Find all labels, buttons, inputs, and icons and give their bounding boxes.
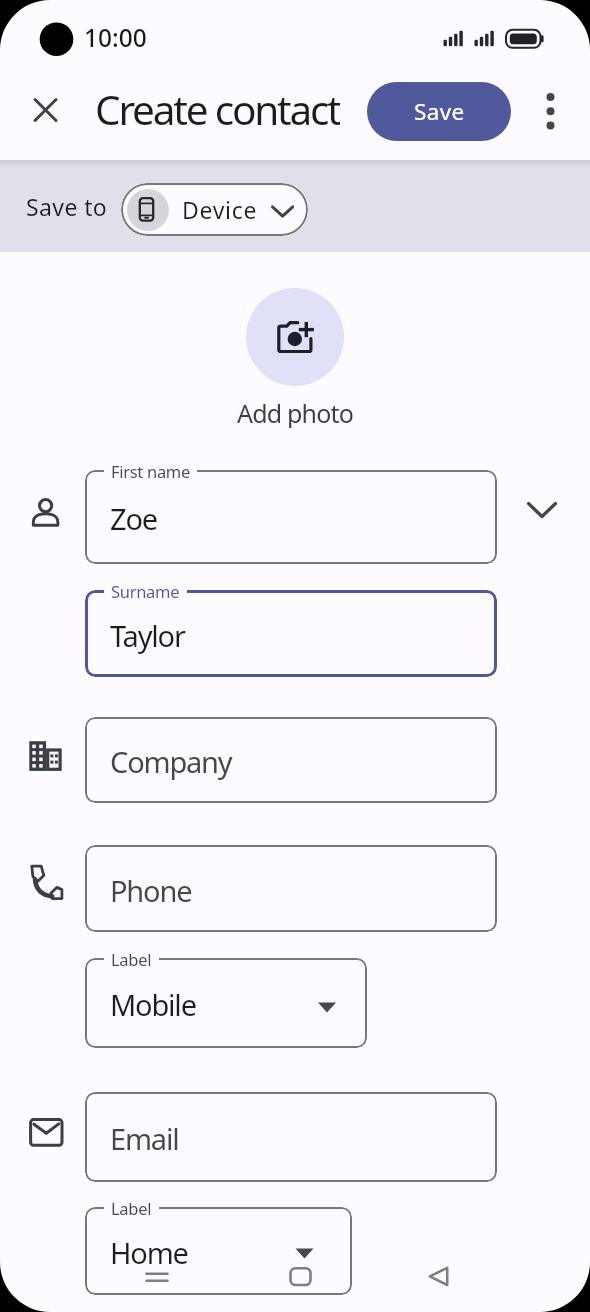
staticText: Label	[111, 1197, 152, 1219]
staticText: Label	[111, 948, 152, 970]
staticText: First name	[111, 460, 190, 482]
button[interactable]: Company	[85, 717, 497, 803]
staticText: Email	[110, 1119, 179, 1158]
button[interactable]	[518, 492, 564, 538]
button[interactable]: Taylor	[85, 590, 497, 677]
button[interactable]: Save	[367, 82, 511, 141]
button[interactable]: Device	[121, 183, 308, 236]
button[interactable]	[285, 1262, 319, 1292]
button[interactable]	[28, 93, 62, 127]
staticText: Device	[182, 194, 258, 225]
staticText: Save to	[26, 191, 108, 222]
staticText: 10:00	[84, 21, 147, 53]
button[interactable]	[246, 288, 344, 386]
staticText: Add photo	[237, 396, 354, 428]
button[interactable]	[536, 90, 564, 134]
staticText: Phone	[110, 871, 192, 910]
staticText: Mobile	[110, 985, 196, 1024]
staticText: Zoe	[110, 499, 157, 538]
button[interactable]: Phone	[85, 845, 497, 932]
button[interactable]: Home	[85, 1207, 352, 1295]
button[interactable]	[424, 1262, 458, 1292]
staticText: Surname	[111, 580, 180, 602]
staticText: Save	[414, 96, 465, 127]
button[interactable]: Mobile	[85, 958, 367, 1048]
button[interactable]: Email	[85, 1092, 497, 1182]
staticText: Create contact	[95, 82, 340, 132]
staticText: Company	[110, 742, 232, 781]
button[interactable]: Zoe	[85, 470, 497, 564]
button[interactable]	[141, 1262, 175, 1292]
staticText: Home	[110, 1233, 188, 1272]
staticText: Taylor	[110, 616, 185, 655]
